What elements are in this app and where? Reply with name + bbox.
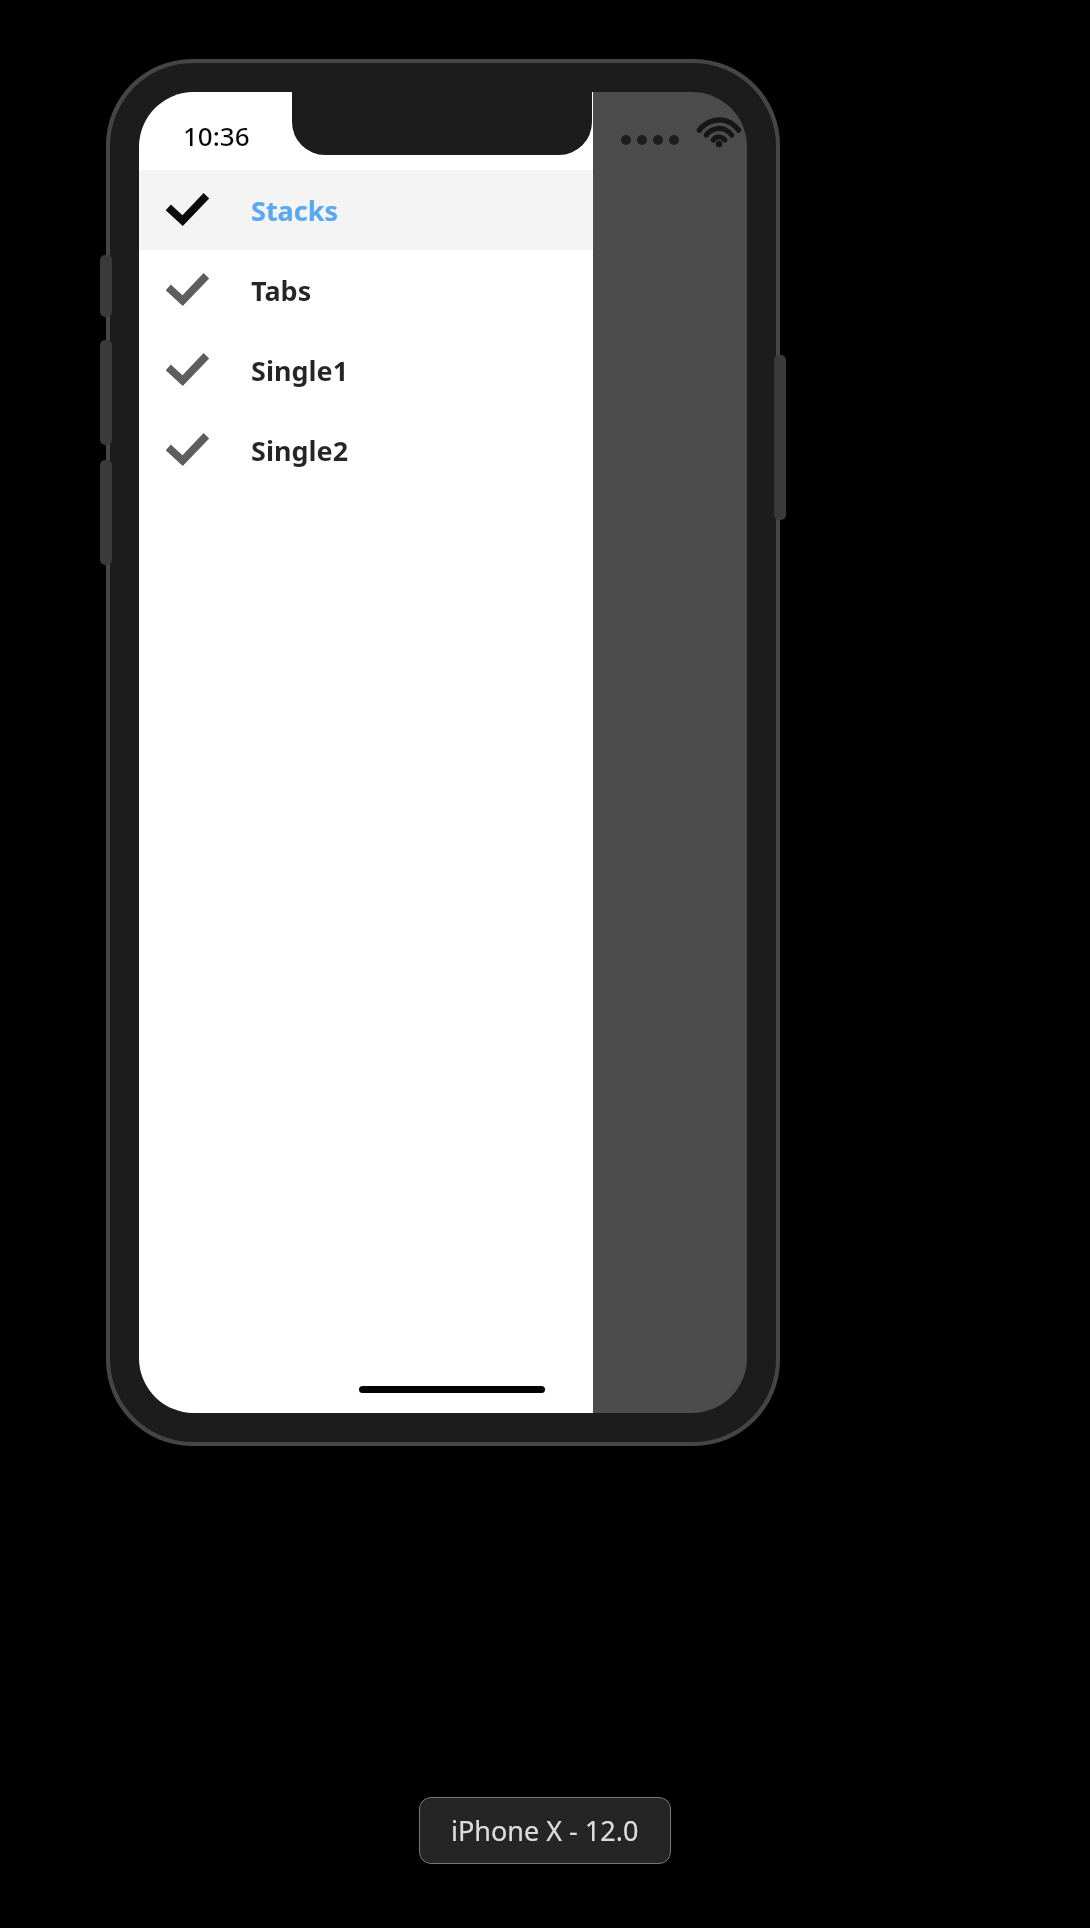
other: Power (774, 355, 786, 520)
other: Mute switch (100, 255, 112, 317)
staticText: 10:36 (183, 118, 250, 153)
other: Volume down (100, 460, 112, 565)
staticText: iPhone X - 12.0 (451, 1812, 639, 1849)
staticText: Tabs (251, 272, 312, 309)
staticText: Single2 (251, 432, 349, 469)
staticText: Single1 (251, 352, 349, 389)
button[interactable]: Tabs (139, 250, 593, 330)
button[interactable]: Single1 (139, 330, 593, 410)
other: Volume up (100, 340, 112, 445)
button[interactable]: Single2 (139, 410, 593, 490)
staticText: Stacks (251, 192, 338, 229)
button[interactable]: Stacks (139, 170, 593, 250)
button[interactable]: iPhone X - 12.0 (419, 1797, 671, 1864)
